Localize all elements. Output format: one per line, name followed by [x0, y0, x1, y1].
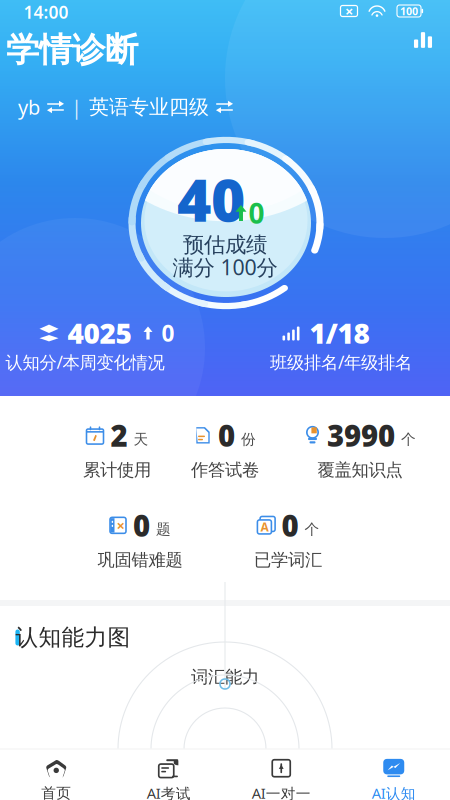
staticText: 0	[133, 506, 150, 545]
button[interactable]: AI认知	[337, 749, 450, 800]
staticText: 累计使用	[83, 459, 151, 481]
staticText: A	[260, 519, 268, 535]
staticText: yb	[18, 94, 40, 120]
staticText: 覆盖知识点	[317, 459, 402, 481]
button[interactable]: 首页	[0, 749, 112, 800]
button[interactable]: AI一对一	[225, 749, 337, 800]
staticText: 份	[241, 430, 256, 448]
staticText: 首页	[41, 784, 71, 800]
staticText: 40	[177, 160, 245, 238]
staticText: 作答试卷	[191, 459, 259, 481]
staticText: 认知能力图	[16, 624, 131, 651]
button[interactable]: yb	[18, 94, 64, 120]
staticText: AI认知	[372, 783, 416, 800]
staticText: 0	[218, 416, 235, 455]
button[interactable]: 英语专业四级	[89, 95, 233, 119]
staticText: 满分 100分	[172, 253, 277, 281]
staticText: 个	[401, 430, 416, 448]
staticText: 4025	[67, 314, 131, 352]
staticText: |	[71, 94, 82, 120]
button[interactable]: AI考试	[112, 749, 225, 800]
staticText: 认知分/本周变化情况	[5, 350, 164, 373]
staticText: 3990	[327, 416, 395, 455]
button[interactable]: Report	[407, 25, 439, 55]
staticText: 个	[304, 520, 319, 538]
staticText: 2	[110, 416, 127, 455]
staticText: 英语专业四级	[89, 95, 209, 119]
staticText: 词汇能力	[191, 666, 259, 688]
staticText: 天	[133, 430, 148, 448]
staticText: 预估成绩	[183, 232, 267, 258]
staticText: ×	[345, 1, 353, 21]
staticText: AI一对一	[252, 783, 311, 800]
staticText: 班级排名/年级排名	[270, 350, 412, 373]
staticText: 学情诊断	[6, 29, 138, 70]
staticText: 巩固错难题	[97, 549, 182, 571]
staticText: 0	[161, 318, 174, 348]
staticText: 100	[400, 4, 418, 18]
staticText: 0	[248, 194, 264, 232]
staticText: 1/18	[309, 314, 369, 352]
staticText: ×	[117, 516, 125, 535]
staticText: 14:00	[23, 0, 68, 23]
staticText: 题	[156, 520, 171, 538]
staticText: 已学词汇	[254, 549, 322, 571]
staticText: AI考试	[147, 783, 191, 800]
staticText: 0	[281, 506, 298, 545]
